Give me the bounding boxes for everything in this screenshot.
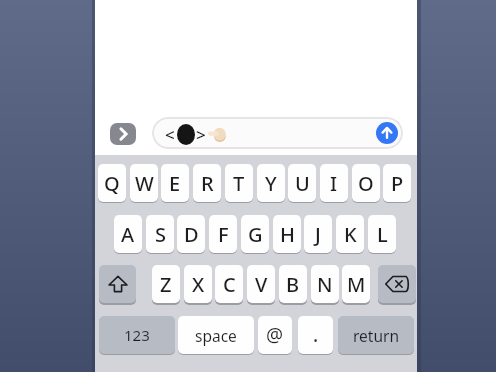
button[interactable]: space [178,316,254,354]
staticText: D [184,221,199,248]
button[interactable]: P [383,164,411,202]
button[interactable]: E [161,164,189,202]
button[interactable] [376,122,398,144]
staticText: Z [160,271,172,298]
button[interactable] [378,265,416,303]
button[interactable] [152,117,403,149]
button[interactable]: N [311,265,339,303]
button[interactable]: R [193,164,221,202]
button[interactable]: X [184,265,212,303]
button[interactable]: B [279,265,307,303]
staticText: . [313,322,319,348]
button[interactable]: D [177,215,205,253]
staticText: S [155,221,166,248]
staticText: G [248,221,263,248]
staticText: I [330,170,338,197]
staticText: J [315,221,321,248]
staticText: C [223,271,236,298]
button[interactable] [110,123,136,145]
staticText: N [317,271,333,298]
button[interactable]: U [288,164,316,202]
staticText: V [255,271,268,298]
staticText: X [192,271,205,298]
button[interactable]: A [114,215,142,253]
staticText: E [169,170,181,197]
button[interactable]: L [368,215,396,253]
staticText: 123 [124,325,150,345]
staticText: H [280,221,295,248]
staticText: K [344,221,357,248]
button[interactable]: C [215,265,243,303]
button[interactable] [99,265,136,303]
staticText: U [295,170,310,197]
button[interactable]: G [241,215,269,253]
staticText: F [218,221,229,248]
staticText: @ [266,322,284,348]
button[interactable]: Z [152,265,180,303]
staticText: W [135,170,154,197]
button[interactable]: W [130,164,158,202]
staticText: > [196,123,206,146]
button[interactable]: Y [257,164,285,202]
staticText: Q [104,170,120,197]
button[interactable]: T [225,164,253,202]
button[interactable]: V [247,265,275,303]
button[interactable]: K [336,215,364,253]
button[interactable]: S [146,215,174,253]
staticText: O [358,170,374,197]
button[interactable]: M [342,265,370,303]
staticText: space [195,325,237,346]
button[interactable]: return [338,316,414,354]
button[interactable]: O [352,164,380,202]
staticText: B [286,271,300,298]
button[interactable]: I [320,164,348,202]
staticText: R [201,170,214,197]
staticText: L [377,221,388,248]
button[interactable]: F [209,215,237,253]
staticText: P [391,170,404,197]
button[interactable]: . [298,316,333,354]
button[interactable]: H [273,215,301,253]
staticText: M [347,271,366,298]
staticText: A [121,221,135,248]
button[interactable]: @ [258,316,292,354]
staticText: Y [265,170,277,197]
staticText: return [353,325,399,346]
staticText: < [165,123,175,146]
button[interactable]: Q [98,164,126,202]
button[interactable]: 123 [99,316,175,354]
button[interactable]: J [304,215,332,253]
staticText: T [233,170,245,197]
